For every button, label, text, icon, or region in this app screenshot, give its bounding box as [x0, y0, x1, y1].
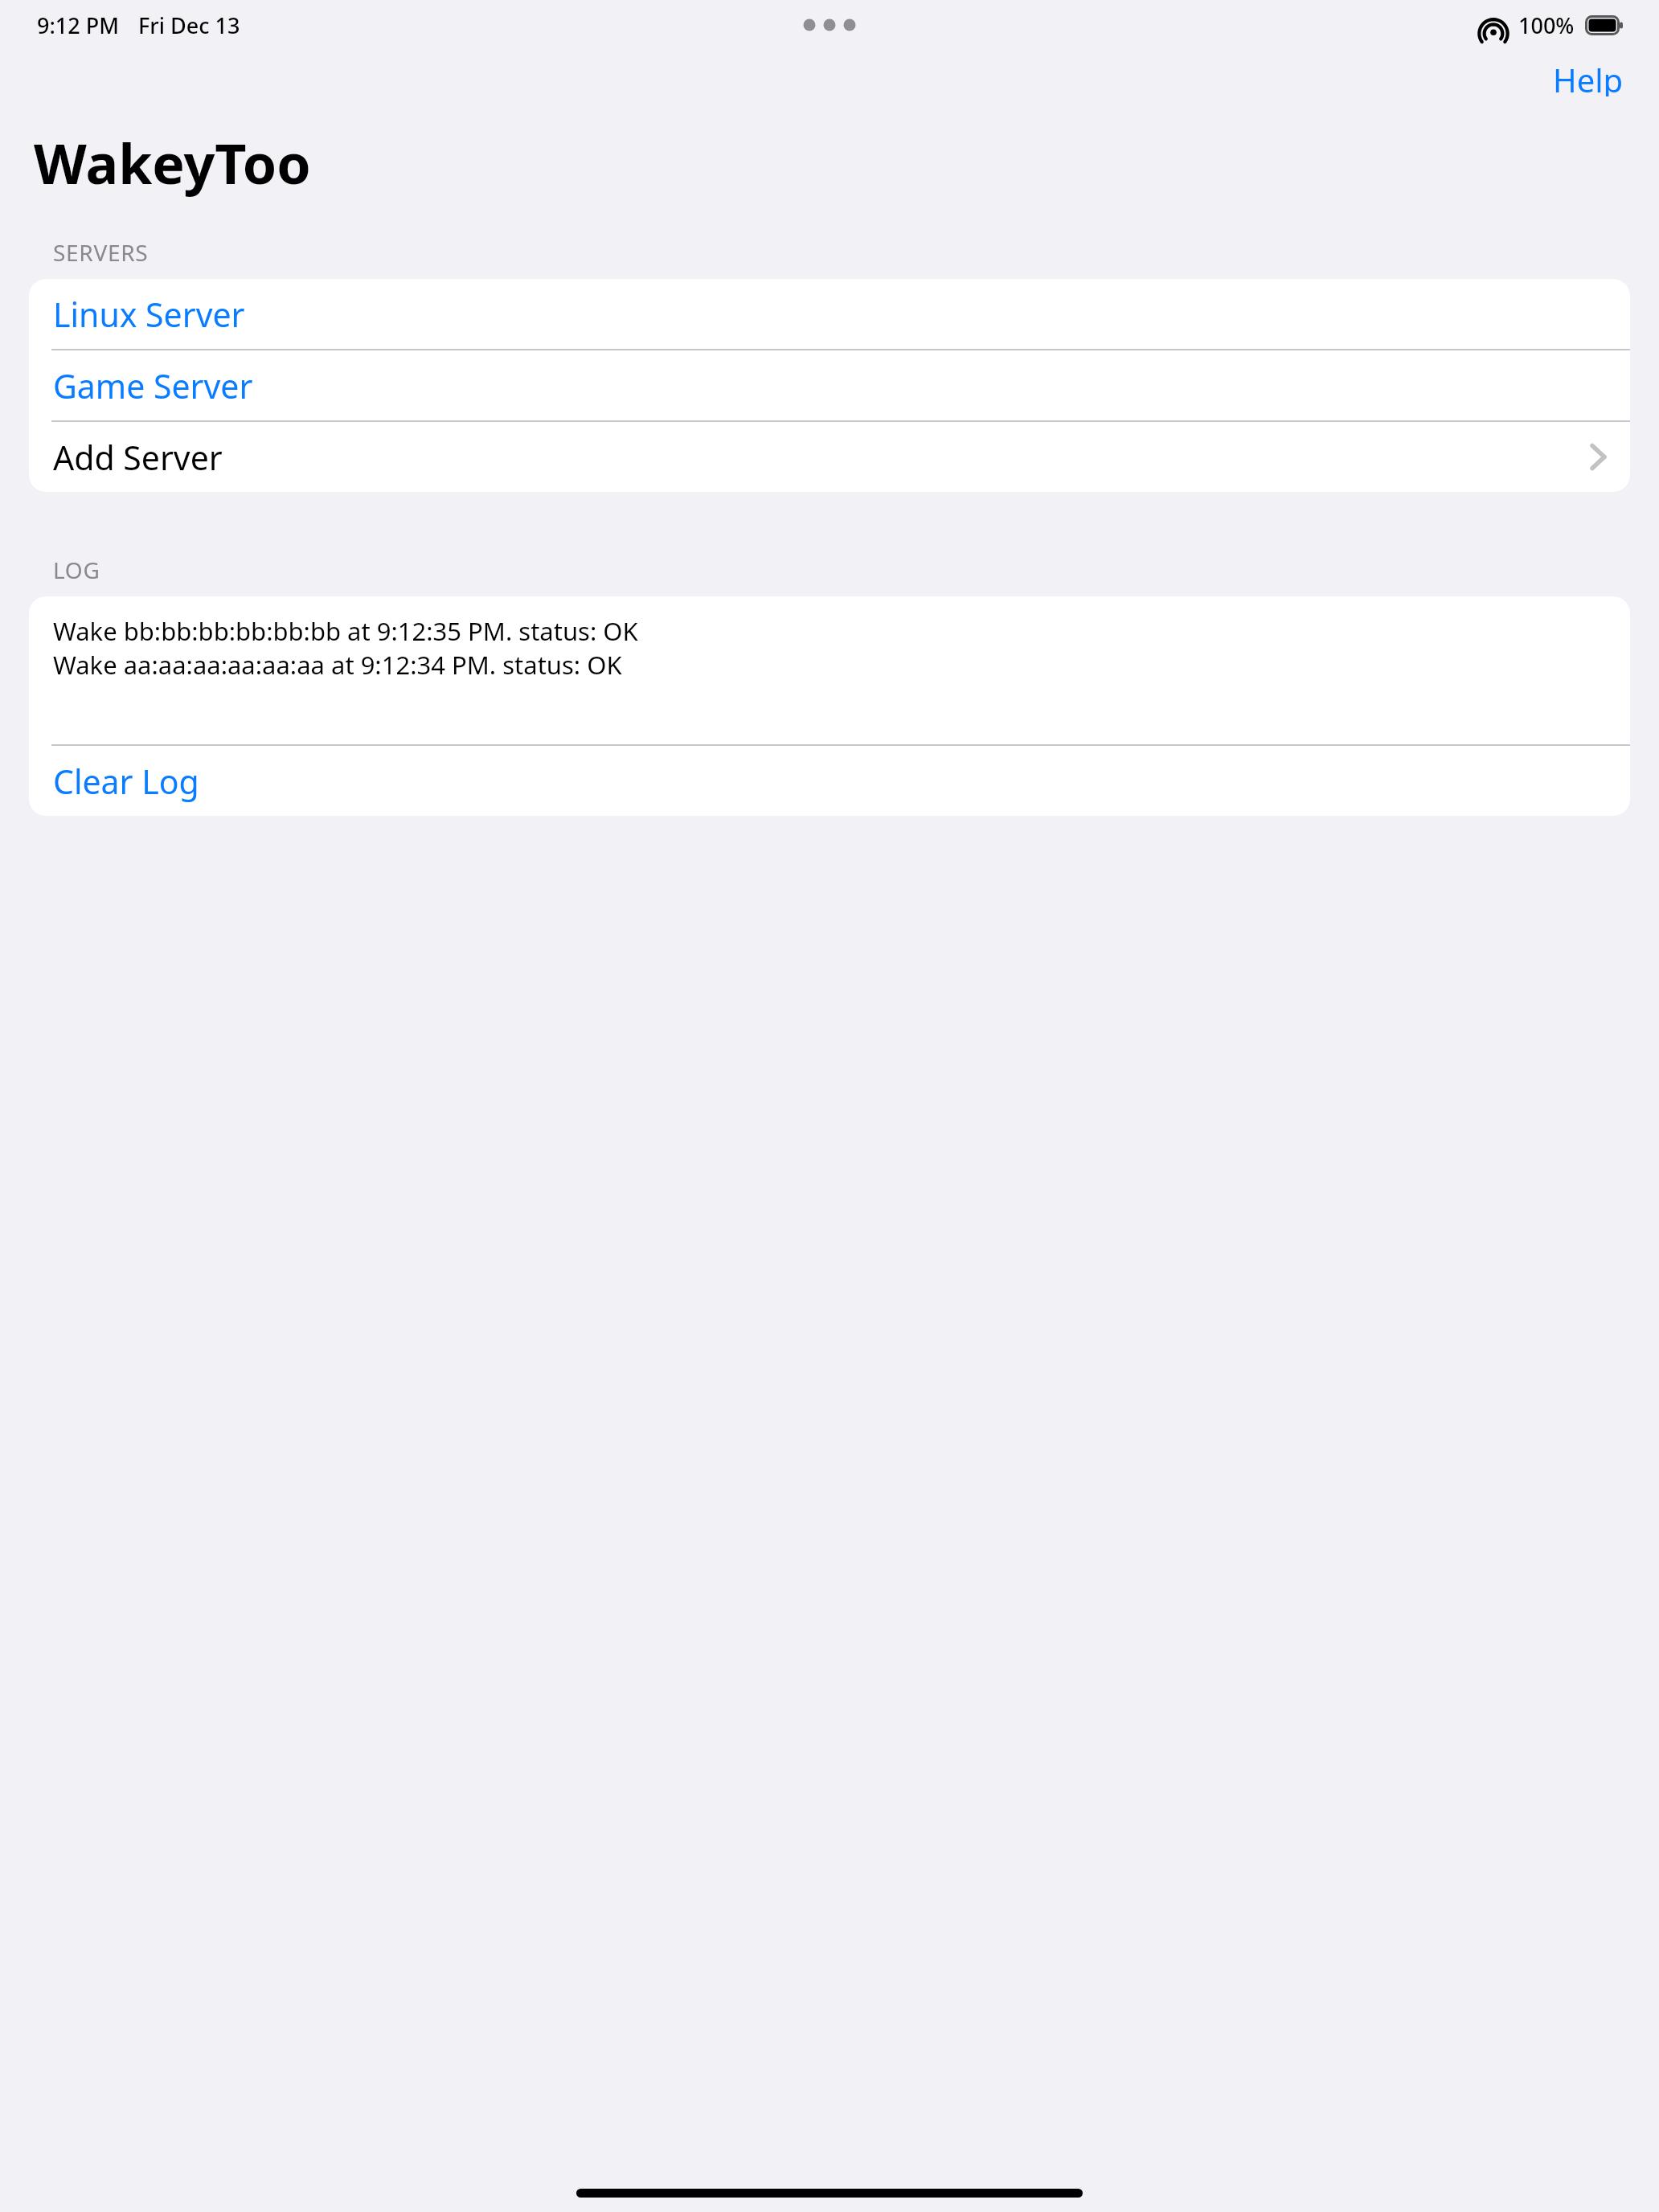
button[interactable]: Clear Log: [29, 746, 1630, 816]
staticText: Wake aa:aa:aa:aa:aa:aa at 9:12:34 PM. st…: [53, 648, 622, 682]
staticText: SERVERS: [53, 237, 149, 268]
staticText: Wake bb:bb:bb:bb:bb:bb at 9:12:35 PM. st…: [53, 614, 638, 648]
staticText: 100%: [1518, 10, 1575, 40]
button[interactable]: Help: [1518, 50, 1659, 104]
staticText: Clear Log: [53, 759, 199, 804]
other: Add Server: [1591, 444, 1606, 470]
button[interactable]: Linux Server: [29, 279, 1630, 349]
button[interactable]: Game Server: [29, 350, 1630, 420]
staticText: LOG: [53, 555, 100, 585]
staticText: Help: [1553, 58, 1624, 96]
staticText: Fri Dec 13: [138, 10, 240, 40]
staticText: 9:12 PM: [37, 10, 119, 40]
staticText: Add Server: [53, 435, 223, 480]
button[interactable]: Add Server: [29, 422, 1630, 492]
staticText: WakeyToo: [34, 125, 311, 200]
staticText: Linux Server: [53, 292, 245, 337]
staticText: Game Server: [53, 363, 253, 408]
